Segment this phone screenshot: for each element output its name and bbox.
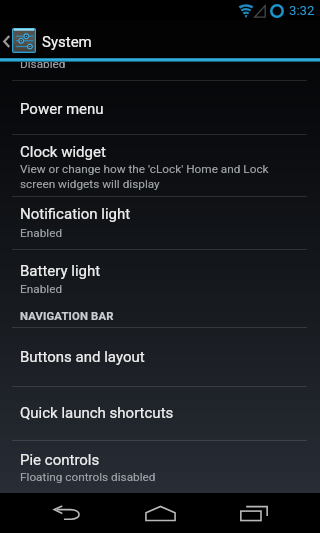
staticText: Notification light [20, 205, 131, 223]
button[interactable] [0, 250, 320, 300]
button[interactable] [0, 328, 320, 386]
staticText: View or change how the 'cLock' Home and … [20, 162, 269, 191]
staticText: Power menu [20, 100, 104, 118]
staticText: Clock widget [20, 143, 106, 161]
staticText: Enabled [20, 282, 63, 296]
staticText: Floating controls disabled [20, 470, 156, 484]
staticText: System [42, 33, 92, 51]
button[interactable]: Back [27, 493, 107, 533]
staticText: Enabled [20, 226, 63, 240]
button[interactable]: Home [120, 493, 200, 533]
staticText: Pie controls [20, 451, 100, 469]
button[interactable] [0, 441, 320, 492]
staticText: Quick launch shortcuts [20, 404, 174, 422]
button[interactable] [0, 197, 320, 249]
button[interactable] [0, 135, 320, 196]
staticText: Disabled [20, 57, 66, 71]
button[interactable]: Navigate up, System [0, 20, 320, 58]
staticText: NAVIGATION BAR [20, 310, 114, 323]
button[interactable] [0, 387, 320, 440]
button[interactable] [0, 81, 320, 134]
staticText: Buttons and layout [20, 348, 145, 366]
staticText: Battery light [20, 262, 101, 280]
button[interactable] [0, 61, 320, 80]
staticText: 3:32 [289, 3, 315, 18]
button[interactable]: Recent apps [214, 493, 294, 533]
